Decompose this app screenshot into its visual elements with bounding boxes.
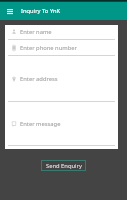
staticText: Enter phone number xyxy=(20,44,77,52)
staticText: Send Enquiry xyxy=(46,162,82,170)
staticText: Enter name xyxy=(20,28,52,36)
staticText: Enter message xyxy=(20,120,61,128)
staticText: Enter address xyxy=(20,75,58,83)
staticText: Inquiry To YnK xyxy=(21,7,61,15)
button[interactable]: Open navigation menu xyxy=(4,5,16,17)
button[interactable]: Send Enquiry xyxy=(41,160,86,171)
